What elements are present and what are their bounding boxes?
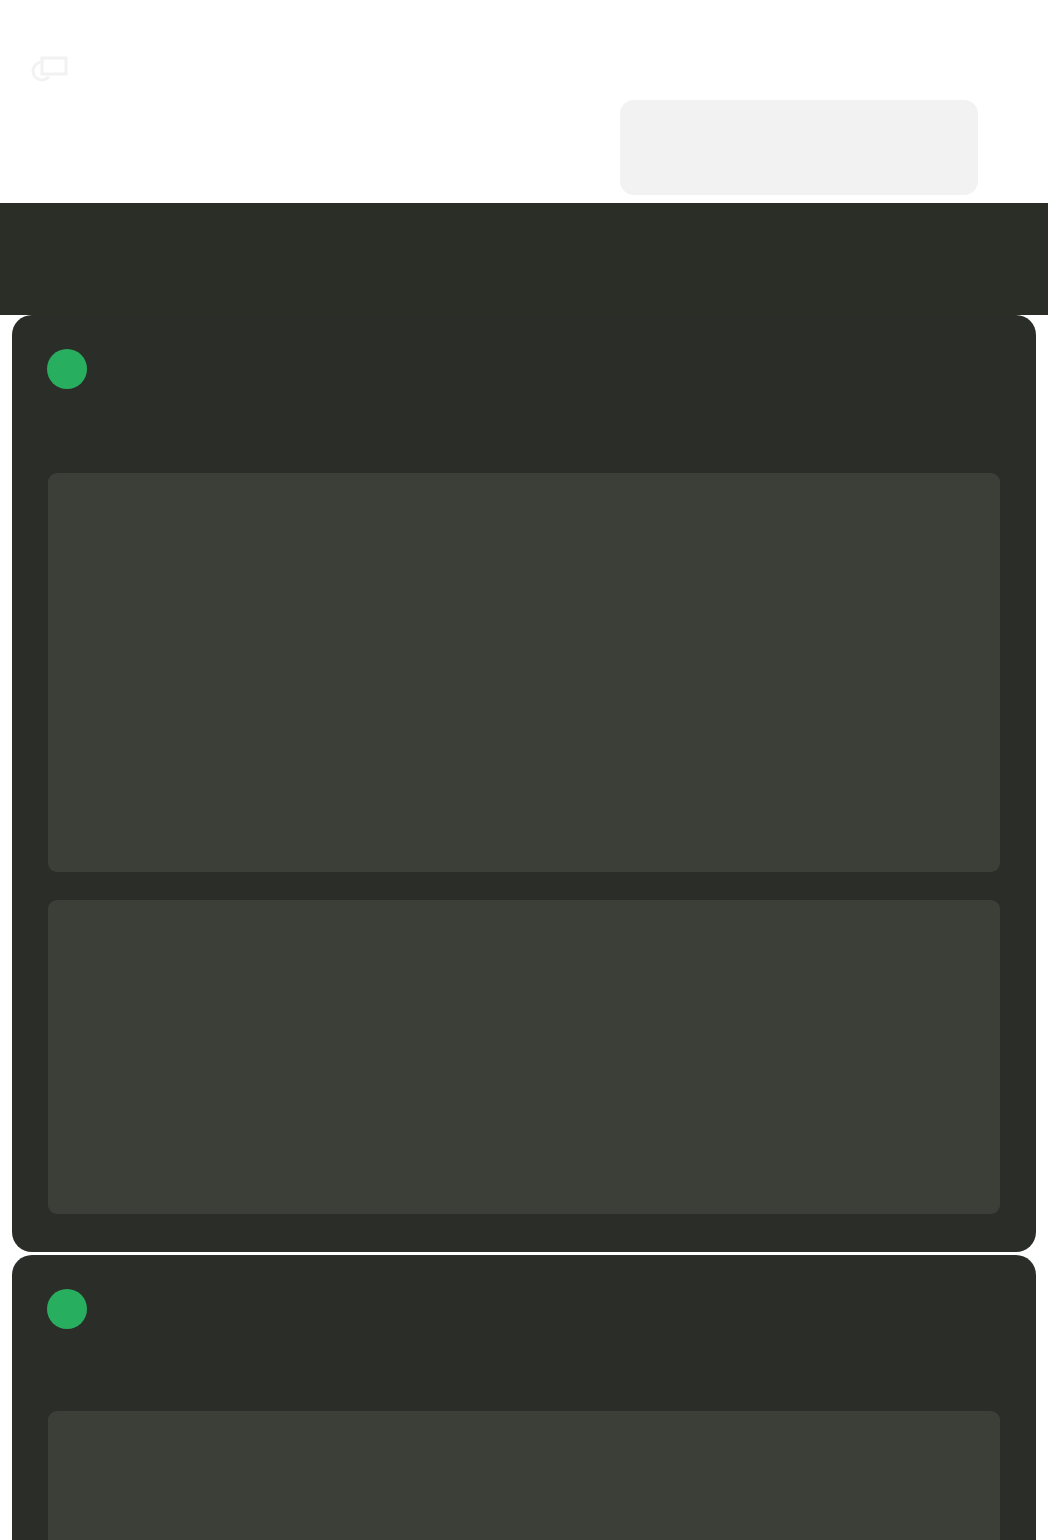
button[interactable]: Back (30, 50, 74, 94)
button[interactable] (12, 1255, 1036, 1540)
button[interactable] (12, 315, 1036, 1252)
